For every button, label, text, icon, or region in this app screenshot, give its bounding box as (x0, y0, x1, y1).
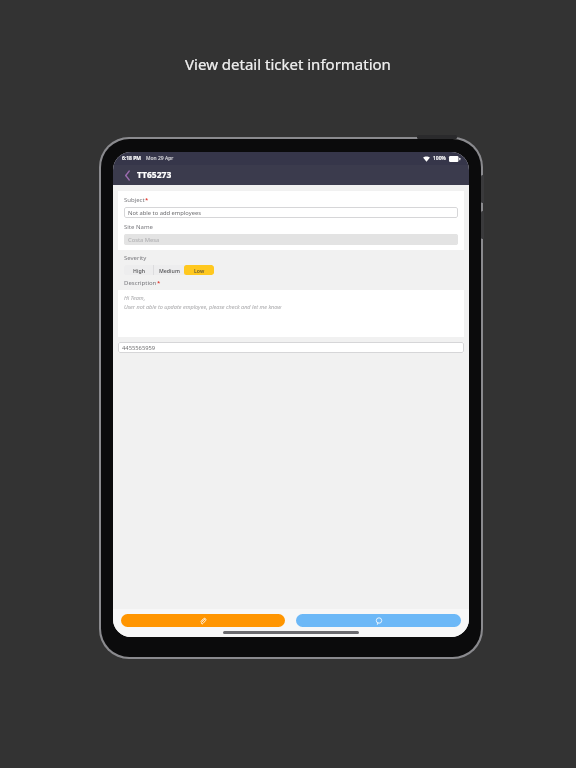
button[interactable]: Back (120, 168, 134, 182)
button[interactable]: Attach file (121, 614, 285, 627)
button[interactable]: 4455565959 (118, 342, 464, 353)
staticText: TT65273 (137, 169, 172, 181)
staticText: 4455565959 (122, 344, 156, 352)
staticText: 100% (433, 155, 446, 162)
button[interactable]: Medium (154, 265, 184, 275)
button[interactable]: Costa Mesa (124, 234, 458, 245)
staticText: Medium (159, 267, 180, 274)
button[interactable]: Not able to add employees (124, 207, 458, 218)
staticText: Mon 29 Apr (146, 155, 174, 162)
staticText: Hi Team, (124, 294, 146, 301)
staticText: High (133, 267, 145, 274)
staticText: Not able to add employees (128, 209, 202, 217)
staticText: User not able to update employee, please… (124, 303, 282, 310)
button[interactable]: High (124, 265, 153, 275)
staticText: Severity (124, 254, 147, 262)
staticText: 6:18 PM (122, 155, 141, 162)
staticText: * (145, 196, 149, 204)
staticText: Site Name (124, 223, 153, 231)
staticText: Low (194, 267, 205, 274)
staticText: Costa Mesa (128, 236, 160, 244)
staticText: View detail ticket information (185, 54, 391, 74)
button[interactable]: Hi Team, (118, 290, 464, 337)
button[interactable]: Low (184, 265, 214, 275)
staticText: * (157, 279, 161, 287)
staticText: Description (124, 279, 157, 287)
button[interactable]: Comments (296, 614, 461, 627)
staticText: Subject (124, 196, 145, 204)
